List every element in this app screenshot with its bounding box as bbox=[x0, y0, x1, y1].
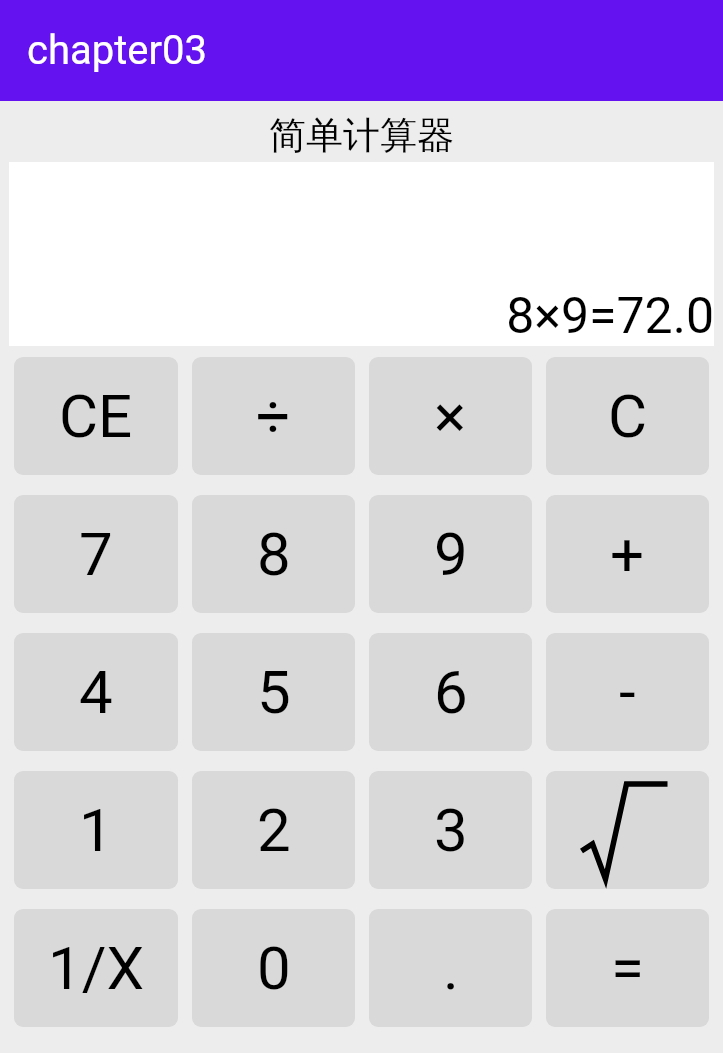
staticText: 9 bbox=[434, 519, 468, 589]
staticText: 1 bbox=[79, 795, 113, 865]
button[interactable]: × bbox=[369, 357, 532, 475]
button[interactable]: 5 bbox=[192, 633, 355, 751]
button[interactable]: 1/X bbox=[14, 909, 178, 1027]
staticText: 1/X bbox=[48, 933, 145, 1003]
button[interactable]: C bbox=[546, 357, 709, 475]
staticText: - bbox=[619, 657, 636, 727]
staticText: 8×9=72.0 bbox=[506, 287, 714, 346]
button[interactable]: + bbox=[546, 495, 709, 613]
button[interactable]: 3 bbox=[369, 771, 532, 889]
button[interactable]: . bbox=[369, 909, 532, 1027]
staticText: 6 bbox=[434, 657, 468, 727]
button[interactable]: 8 bbox=[192, 495, 355, 613]
staticText: + bbox=[610, 519, 645, 589]
button[interactable]: - bbox=[546, 633, 709, 751]
staticText: 4 bbox=[79, 657, 113, 727]
button[interactable] bbox=[546, 771, 709, 889]
button[interactable]: = bbox=[546, 909, 709, 1027]
staticText: = bbox=[611, 933, 644, 1003]
staticText: chapter03 bbox=[27, 27, 207, 74]
staticText: 2 bbox=[257, 795, 291, 865]
button[interactable]: 2 bbox=[192, 771, 355, 889]
button[interactable]: CE bbox=[14, 357, 178, 475]
button[interactable]: 0 bbox=[192, 909, 355, 1027]
button[interactable]: 7 bbox=[14, 495, 178, 613]
button[interactable]: ÷ bbox=[192, 357, 355, 475]
staticText: 简单计算器 bbox=[269, 112, 454, 159]
button[interactable]: 6 bbox=[369, 633, 532, 751]
button[interactable]: 1 bbox=[14, 771, 178, 889]
staticText: 3 bbox=[434, 795, 468, 865]
staticText: 7 bbox=[79, 519, 113, 589]
button[interactable]: 4 bbox=[14, 633, 178, 751]
staticText: ÷ bbox=[256, 381, 291, 451]
staticText: 0 bbox=[257, 933, 291, 1003]
button[interactable]: 9 bbox=[369, 495, 532, 613]
staticText: 5 bbox=[257, 657, 291, 727]
staticText: 8 bbox=[257, 519, 291, 589]
staticText: × bbox=[434, 381, 467, 451]
staticText: C bbox=[608, 381, 648, 451]
staticText: CE bbox=[59, 381, 133, 451]
staticText: . bbox=[443, 933, 459, 1003]
